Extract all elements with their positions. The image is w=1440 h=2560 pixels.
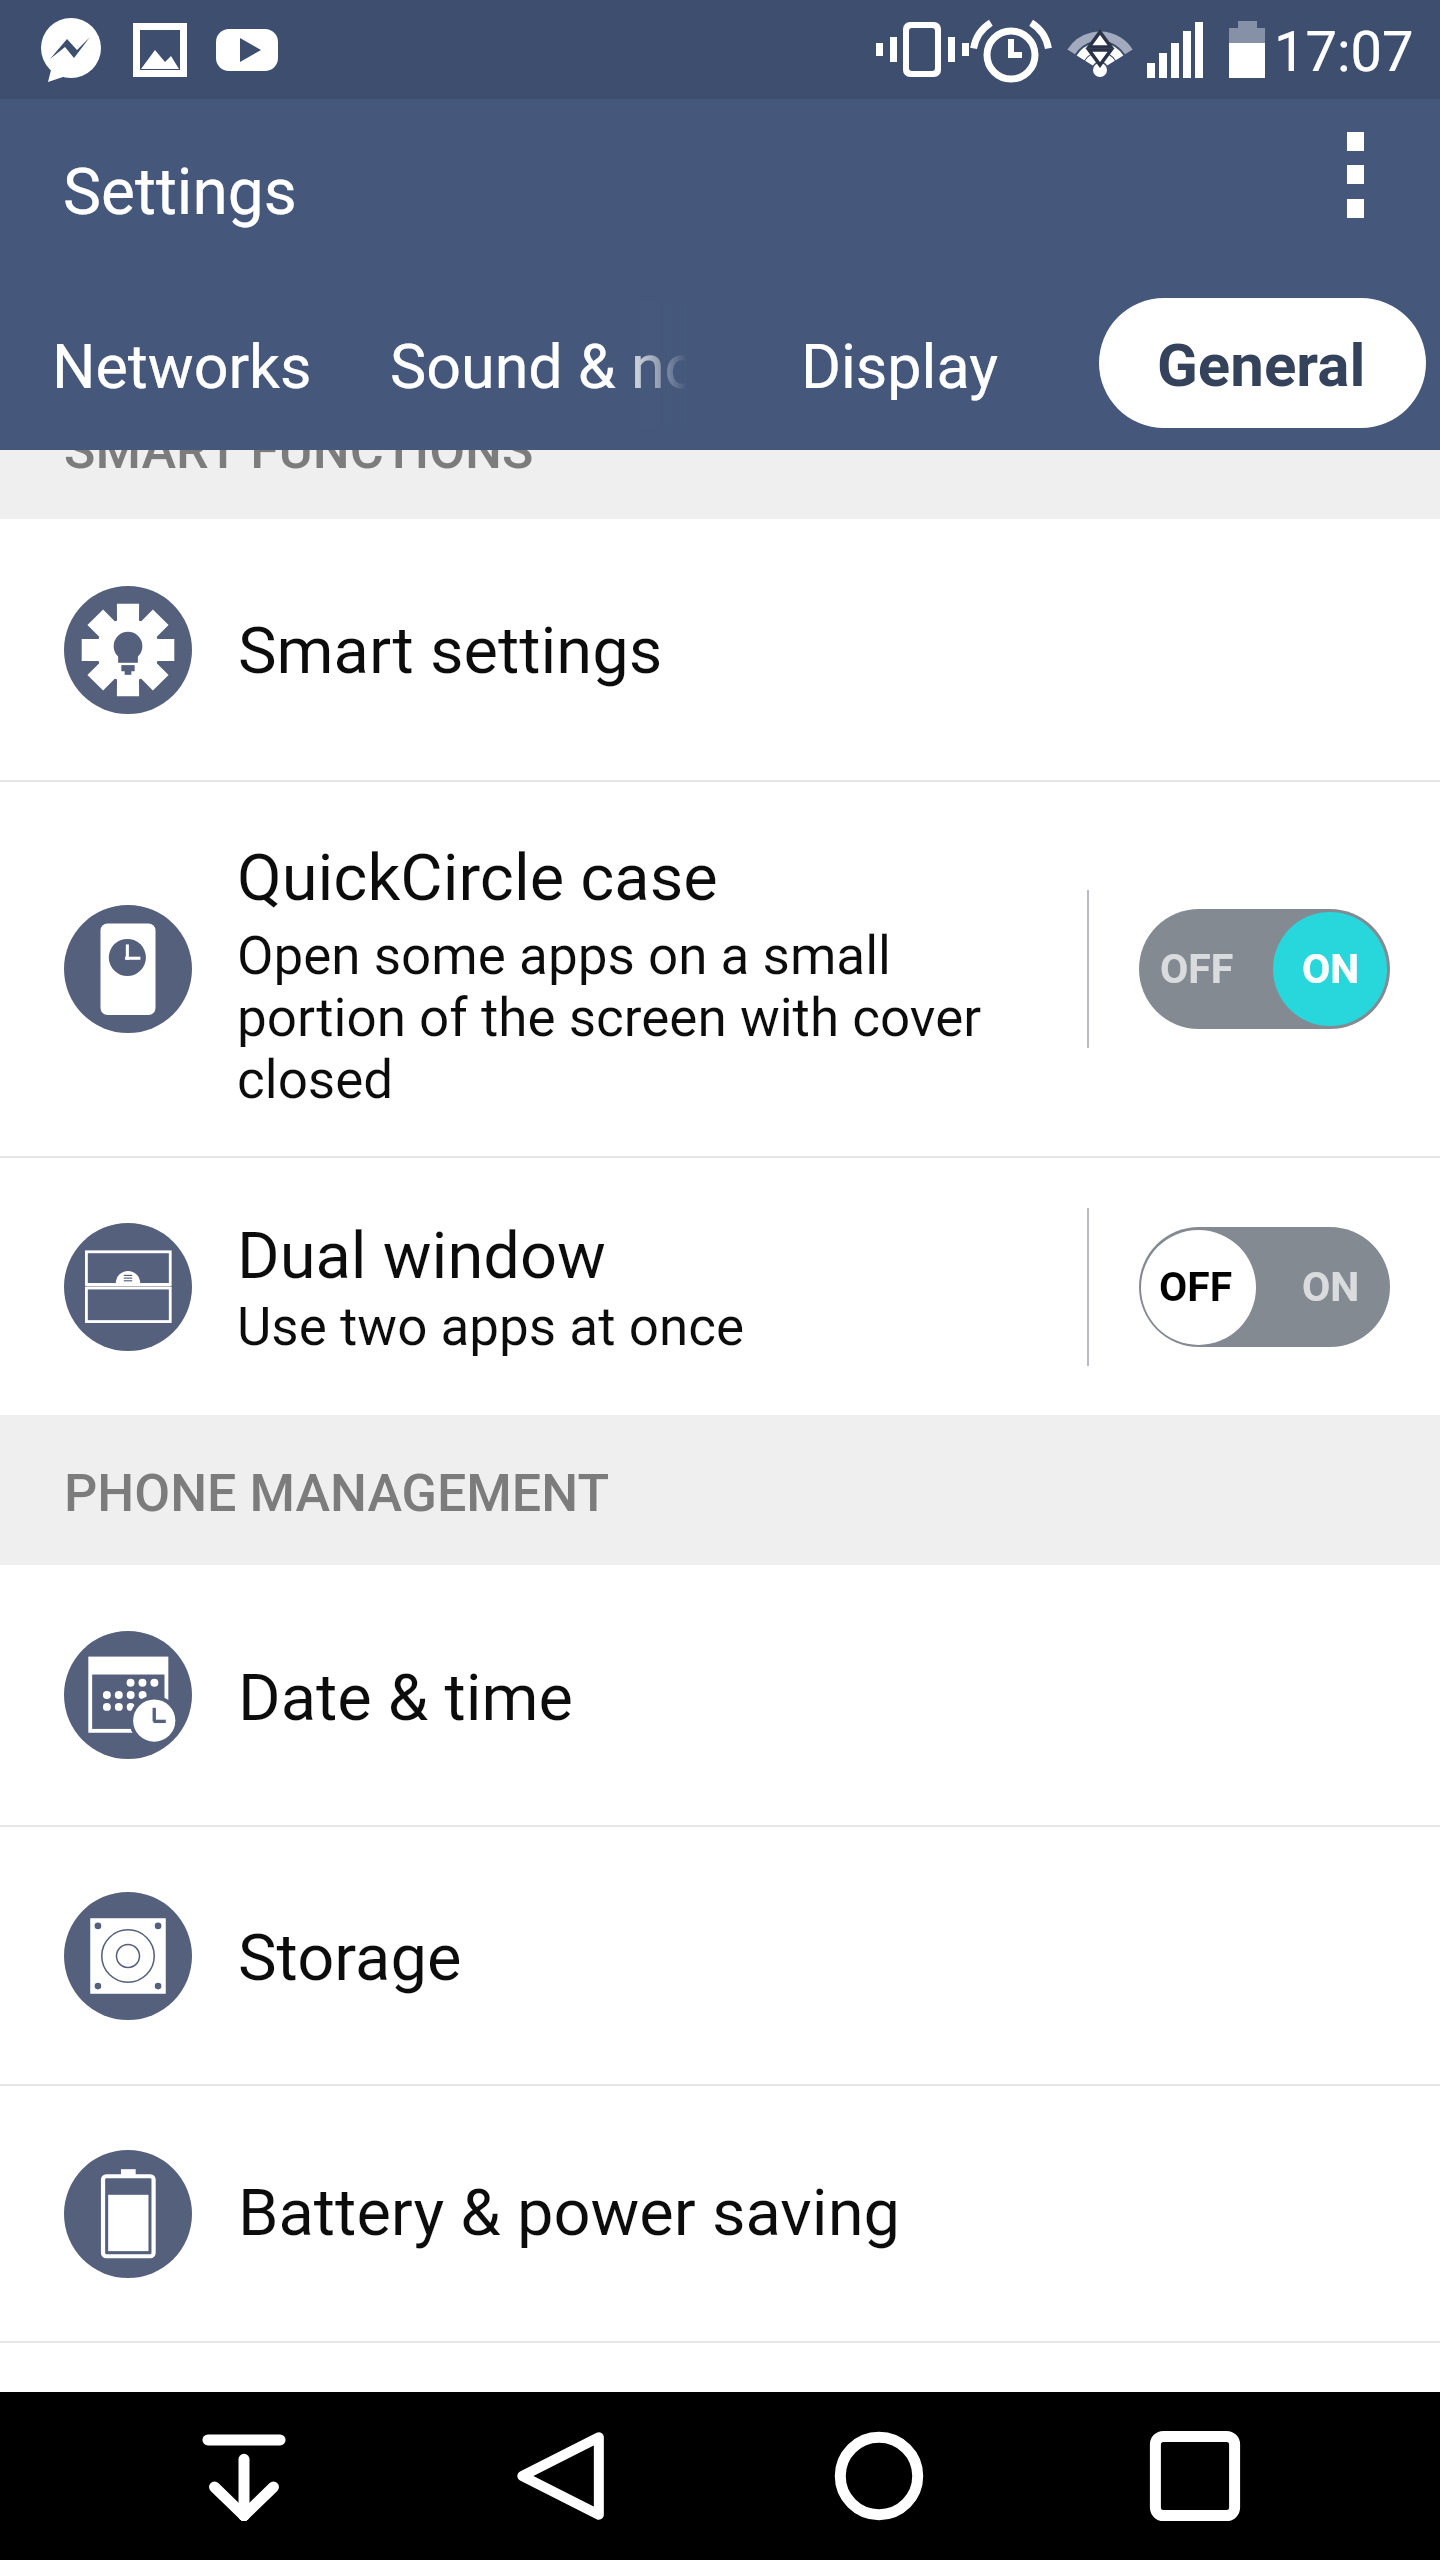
button[interactable]: Smart settings bbox=[0, 519, 1440, 780]
staticText: OFF bbox=[1160, 945, 1234, 993]
staticText: Dual window bbox=[237, 1218, 606, 1294]
button[interactable]: Turn off bbox=[1139, 909, 1390, 1029]
staticText: Settings bbox=[63, 155, 297, 230]
staticText: QuickCircle case bbox=[237, 840, 718, 916]
staticText: Open some apps on a small bbox=[237, 925, 891, 987]
button[interactable]: Battery & power saving bbox=[0, 2086, 1440, 2341]
button[interactable]: Back bbox=[471, 2392, 651, 2560]
staticText: portion of the screen with cover bbox=[237, 987, 982, 1049]
button[interactable]: Display bbox=[776, 300, 1026, 430]
staticText: Use two apps at once bbox=[237, 1296, 745, 1358]
staticText: ON bbox=[1302, 1263, 1360, 1311]
button[interactable]: QuickCircle case bbox=[0, 782, 1440, 1156]
staticText: General bbox=[1157, 330, 1366, 400]
button[interactable]: Date & time bbox=[0, 1565, 1440, 1825]
staticText: Networks bbox=[52, 331, 312, 402]
staticText: closed bbox=[237, 1049, 394, 1111]
staticText: Display bbox=[801, 331, 999, 402]
staticText: Battery & power saving bbox=[238, 2175, 901, 2251]
button[interactable]: Recent apps bbox=[1105, 2392, 1285, 2560]
button[interactable]: General bbox=[1099, 298, 1426, 428]
staticText: PHONE MANAGEMENT bbox=[64, 1463, 610, 1524]
staticText: 17:07 bbox=[1274, 19, 1414, 85]
button[interactable]: Dual window bbox=[0, 1158, 1440, 1415]
button[interactable]: Networks bbox=[27, 300, 339, 430]
staticText: ON bbox=[1302, 945, 1360, 993]
staticText: Storage bbox=[238, 1920, 462, 1996]
button[interactable]: Sound & notification bbox=[365, 300, 687, 430]
staticText: OFF bbox=[1159, 1263, 1233, 1311]
staticText: Date & time bbox=[238, 1660, 573, 1736]
button[interactable]: Storage bbox=[0, 1827, 1440, 2084]
button[interactable]: Turn on bbox=[1139, 1227, 1390, 1347]
button[interactable]: More options bbox=[1298, 110, 1413, 240]
button[interactable]: Home bbox=[789, 2392, 969, 2560]
staticText: Sound & notification bbox=[390, 331, 687, 402]
button[interactable]: Hide keyboard bbox=[154, 2392, 334, 2560]
staticText: SMART FUNCTIONS bbox=[64, 420, 534, 481]
staticText: Smart settings bbox=[238, 613, 663, 689]
